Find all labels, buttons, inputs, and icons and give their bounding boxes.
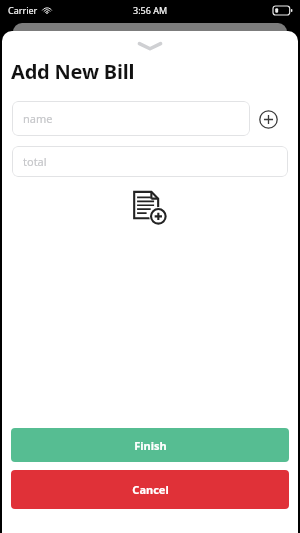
- button[interactable]: Finish: [11, 428, 289, 462]
- button[interactable]: Add person: [255, 106, 281, 132]
- button[interactable]: total: [12, 146, 288, 177]
- staticText: 3:56 AM: [133, 4, 168, 16]
- staticText: total: [23, 154, 47, 169]
- button[interactable]: name: [12, 101, 250, 136]
- staticText: Cancel: [132, 482, 169, 497]
- staticText: Carrier: [8, 4, 38, 16]
- button[interactable]: Dismiss: [128, 36, 172, 54]
- button[interactable]: Add item: [130, 188, 170, 228]
- button[interactable]: Cancel: [11, 470, 289, 509]
- staticText: Add New Bill: [11, 58, 135, 85]
- staticText: name: [23, 111, 53, 126]
- staticText: Finish: [134, 438, 167, 453]
